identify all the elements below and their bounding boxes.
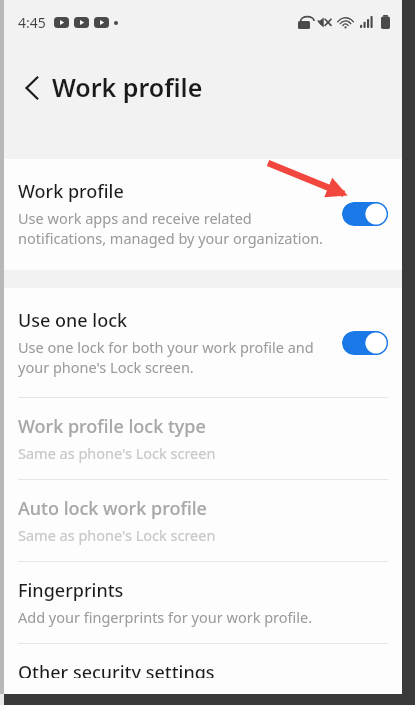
button[interactable]: Use one lock [4, 288, 402, 397]
staticText: Work profile [18, 179, 124, 204]
button[interactable]: Fingerprints [4, 562, 402, 643]
button[interactable]: Auto lock work profile [4, 480, 402, 561]
staticText: Work profile [52, 70, 203, 104]
staticText: Auto lock work profile [18, 496, 207, 521]
staticText: Work profile lock type [18, 414, 206, 439]
staticText: Add your fingerprints for your work prof… [18, 607, 313, 627]
button[interactable]: Other security settings [4, 644, 402, 694]
button[interactable]: Work profile [4, 159, 402, 270]
button[interactable]: Toggle [342, 202, 388, 226]
button[interactable]: Work profile lock type [4, 398, 402, 479]
staticText: Use work apps and receive related notifi… [18, 208, 324, 248]
staticText: 4:45 [18, 13, 46, 32]
button[interactable]: Toggle [342, 331, 388, 355]
staticText: Same as phone's Lock screen [18, 525, 216, 545]
button[interactable]: Back [10, 66, 54, 110]
staticText: Same as phone's Lock screen [18, 443, 216, 463]
staticText: Use one lock for both your work profile … [18, 337, 314, 377]
staticText: Fingerprints [18, 578, 124, 603]
staticText: Use one lock [18, 308, 128, 333]
staticText: Other security settings [18, 660, 215, 678]
